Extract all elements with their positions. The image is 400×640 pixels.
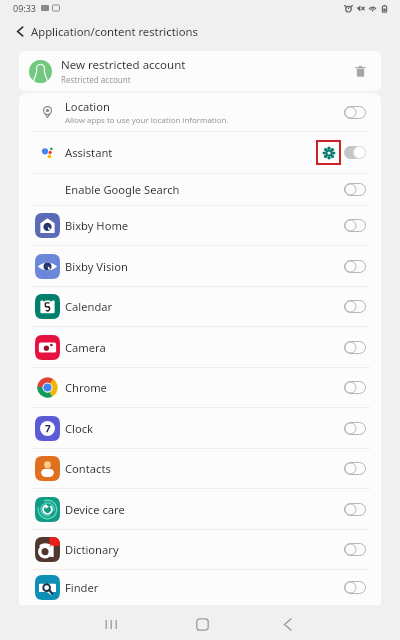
button[interactable]: Bixby Home [19, 206, 381, 245]
button[interactable]: Toggle [344, 260, 366, 273]
button[interactable]: Back [7, 18, 33, 44]
button[interactable]: Dictionary [19, 530, 381, 569]
staticText: 09:33 [13, 2, 37, 14]
button[interactable]: Finder [19, 570, 381, 605]
button[interactable]: Enable Google Search [19, 174, 381, 205]
staticText: Bixby Vision [65, 259, 128, 274]
staticText: Restricted account [61, 74, 131, 85]
button[interactable]: Toggle [344, 341, 366, 354]
button[interactable]: Back [263, 607, 311, 640]
staticText: Contacts [65, 461, 111, 476]
staticText: Camera [65, 340, 106, 355]
button[interactable]: Toggle [344, 462, 366, 475]
button[interactable]: Toggle [344, 106, 366, 119]
button[interactable]: Chrome [19, 368, 381, 407]
button[interactable]: Location [19, 93, 381, 131]
staticText: Location [65, 99, 110, 114]
button[interactable]: Assistant [19, 132, 381, 173]
button[interactable]: Toggle [344, 381, 366, 394]
staticText: Assistant [65, 145, 113, 160]
staticText: Dictionary [65, 542, 119, 557]
button[interactable]: Toggle [344, 146, 366, 159]
button[interactable]: Toggle [344, 300, 366, 313]
button[interactable]: Toggle [344, 503, 366, 516]
button[interactable]: New restricted account [19, 51, 381, 91]
staticText: Chrome [65, 380, 107, 395]
button[interactable]: Calendar [19, 287, 381, 326]
staticText: Application/content restrictions [31, 24, 198, 39]
staticText: Finder [65, 580, 99, 595]
staticText: Bixby Home [65, 218, 129, 233]
button[interactable]: Device care [19, 489, 381, 529]
button[interactable]: Toggle [344, 581, 366, 594]
button[interactable]: Bixby Vision [19, 246, 381, 286]
staticText: New restricted account [61, 57, 186, 73]
button[interactable]: Clock [19, 408, 381, 448]
staticText: Calendar [65, 299, 113, 314]
staticText: Allow apps to use your location informat… [65, 115, 229, 126]
button[interactable]: Recent apps [87, 607, 135, 640]
button[interactable]: Camera [19, 327, 381, 367]
button[interactable]: Contacts [19, 449, 381, 488]
staticText: Enable Google Search [65, 182, 180, 197]
staticText: Clock [65, 421, 94, 436]
button[interactable]: Toggle [344, 422, 366, 435]
button[interactable]: Toggle [344, 183, 366, 196]
staticText: Device care [65, 502, 125, 517]
button[interactable]: Toggle [344, 543, 366, 556]
button[interactable]: Delete account [343, 54, 377, 88]
button[interactable]: Toggle [344, 219, 366, 232]
button[interactable]: Home [178, 607, 226, 640]
